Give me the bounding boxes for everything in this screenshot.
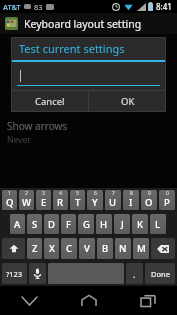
staticText: 4 (59, 190, 62, 197)
staticText: B (102, 242, 109, 255)
staticText: Done (151, 269, 170, 279)
staticText: E (41, 196, 47, 209)
button[interactable]: Recent apps (118, 286, 177, 315)
staticText: . (133, 268, 136, 280)
button[interactable]: 6 (87, 190, 103, 210)
staticText: Show arrows (7, 119, 68, 133)
button[interactable]: Delete (151, 238, 175, 259)
button[interactable]: A (10, 214, 25, 234)
button[interactable]: M (133, 238, 149, 259)
button[interactable]: J (114, 214, 130, 234)
button[interactable]: 9 (141, 190, 157, 210)
staticText: 3 (42, 190, 45, 197)
staticText: A (14, 218, 21, 231)
button[interactable]: F (61, 214, 76, 234)
staticText: H (100, 218, 108, 231)
button[interactable]: S (27, 214, 42, 234)
button[interactable]: 0 (159, 190, 175, 210)
staticText: 83 (34, 2, 43, 12)
button[interactable]: 5 (70, 190, 85, 210)
button[interactable]: Z (27, 238, 42, 259)
button[interactable]: D (44, 214, 59, 234)
staticText: N (119, 242, 127, 255)
button[interactable]: Voice input (29, 263, 46, 284)
staticText: C (66, 242, 73, 255)
button[interactable]: . (126, 263, 143, 284)
staticText: Test current settings (19, 41, 125, 56)
button[interactable]: Home (59, 286, 118, 315)
button[interactable]: B (97, 238, 113, 259)
staticText: Keyboard layout setting (24, 17, 142, 31)
staticText: U (109, 196, 117, 209)
staticText: P (164, 196, 170, 209)
staticText: 2 (25, 190, 28, 197)
staticText: F (66, 218, 72, 231)
button[interactable]: Hide keyboard (0, 286, 59, 315)
staticText: 8 (130, 190, 133, 197)
button[interactable]: ?123 (2, 263, 27, 284)
staticText: 0 (166, 190, 169, 197)
staticText: OK (121, 95, 135, 108)
button[interactable]: Done (145, 263, 175, 284)
button[interactable]: Cancel (11, 91, 88, 112)
staticText: 1 (8, 190, 11, 197)
staticText: 5 (76, 190, 79, 197)
staticText: Never (7, 134, 31, 146)
button[interactable]: 3 (36, 190, 51, 210)
staticText: Cancel (35, 95, 65, 108)
staticText: Q (6, 196, 14, 209)
staticText: Normal layout (7, 34, 68, 43)
staticText: S (32, 218, 38, 231)
button[interactable]: X (44, 238, 59, 259)
button[interactable]: V (79, 238, 95, 259)
button[interactable]: 4 (53, 190, 68, 210)
button[interactable]: Shift (2, 238, 25, 259)
staticText: M (137, 242, 146, 255)
button[interactable]: H (96, 214, 112, 234)
button[interactable]: 7 (105, 190, 121, 210)
button[interactable]: 8 (123, 190, 139, 210)
staticText: J (121, 218, 124, 231)
button[interactable]: 1 (2, 190, 17, 210)
button[interactable]: G (78, 214, 94, 234)
button[interactable]: 2 (19, 190, 34, 210)
staticText: 6 (94, 190, 97, 197)
staticText: T (75, 196, 81, 209)
staticText: O (145, 196, 153, 209)
staticText: G (83, 218, 90, 231)
staticText: Y (92, 196, 98, 209)
button[interactable]: OK (89, 91, 166, 112)
staticText: ?123 (6, 269, 23, 279)
staticText: Z (32, 242, 38, 255)
staticText: X (49, 242, 55, 255)
staticText: 7 (112, 190, 115, 197)
button[interactable]: N (115, 238, 131, 259)
staticText: 8:41 (156, 1, 172, 12)
staticText: V (84, 242, 90, 255)
staticText: 9 (148, 190, 151, 197)
staticText: R (57, 196, 64, 209)
button[interactable]: L (150, 214, 166, 234)
staticText: W (22, 196, 31, 209)
staticText: K (137, 218, 144, 231)
button[interactable]: C (61, 238, 77, 259)
staticText: I (129, 196, 133, 209)
staticText: AT&T (3, 2, 21, 12)
staticText: D (48, 218, 55, 231)
button[interactable]: K (132, 214, 148, 234)
staticText: L (155, 218, 161, 231)
